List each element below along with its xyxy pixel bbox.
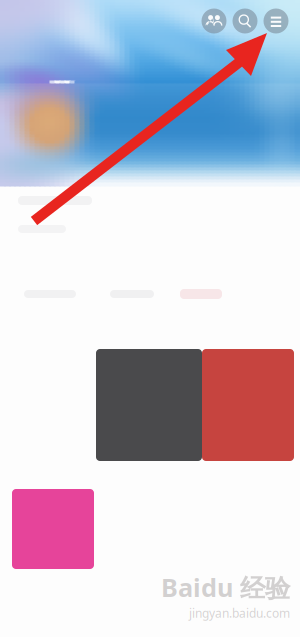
staticText: jingyan.baidu.com (189, 605, 290, 621)
button[interactable]: Menu (262, 7, 290, 35)
button[interactable]: Friends (200, 7, 228, 35)
staticText: Baidu 经验 (161, 570, 290, 604)
button[interactable]: Search (231, 7, 259, 35)
